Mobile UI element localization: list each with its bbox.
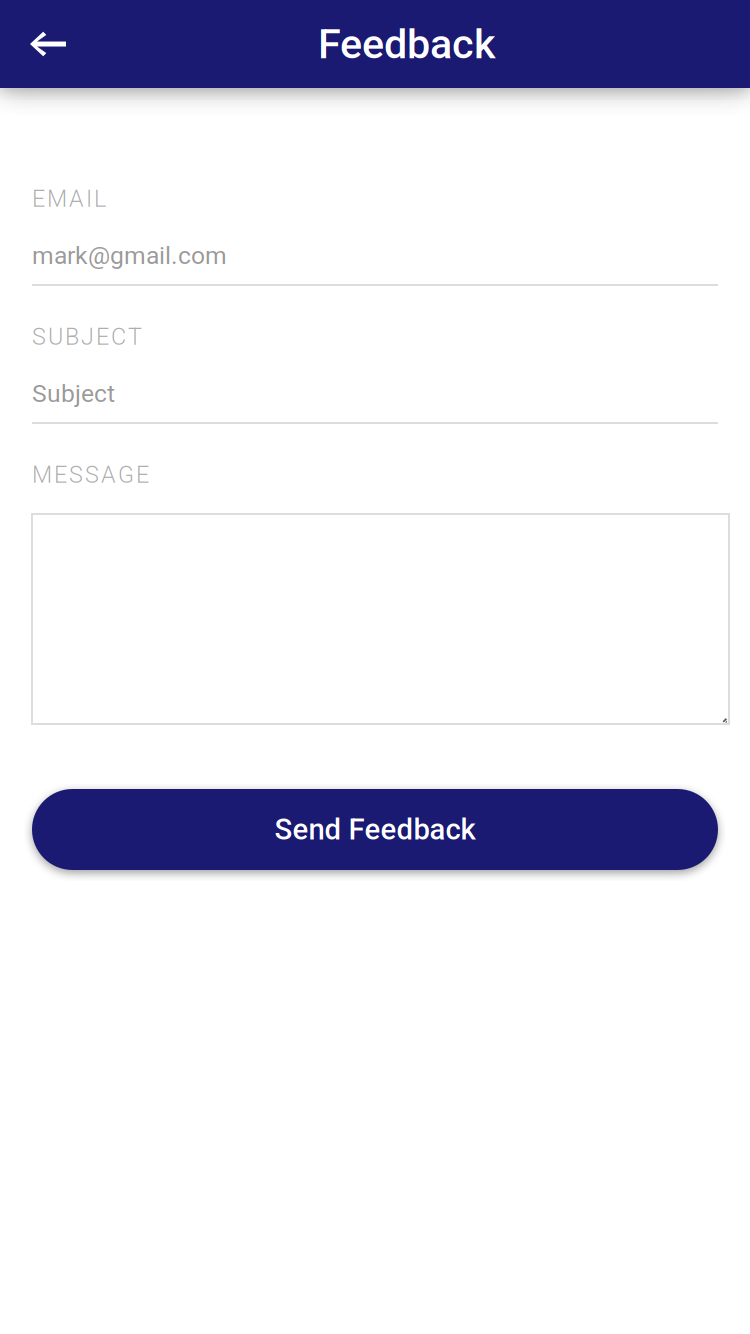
staticText: Subject (32, 379, 115, 408)
button[interactable]: Send Feedback (32, 789, 718, 870)
staticText: Feedback (318, 20, 496, 68)
staticText: Send Feedback (274, 812, 475, 847)
button[interactable] (32, 514, 729, 724)
button[interactable]: Back (0, 0, 94, 88)
staticText: M E S S A G E (32, 461, 149, 488)
button[interactable]: S U B J E C T (32, 323, 718, 424)
staticText: S U B J E C T (32, 323, 142, 350)
button[interactable]: E M A I L (32, 185, 718, 286)
staticText: E M A I L (32, 185, 106, 212)
staticText: mark@gmail.com (32, 241, 227, 270)
